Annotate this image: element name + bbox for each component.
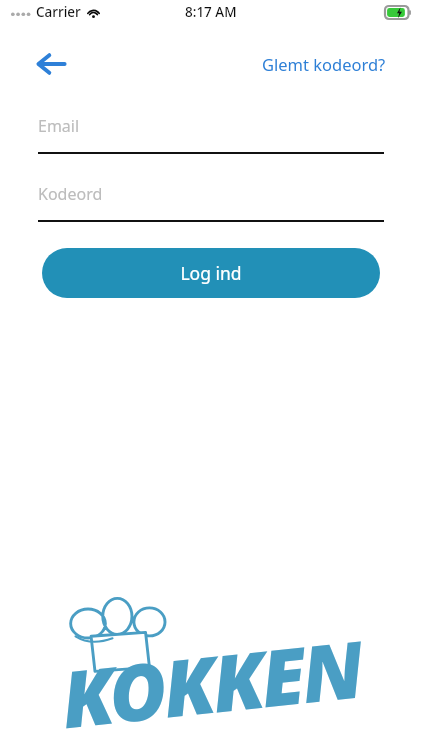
staticText: Carrier: [36, 3, 81, 21]
staticText: KOKKEN: [56, 615, 366, 750]
button[interactable]: Glemt kodeord?: [262, 53, 386, 75]
button[interactable]: Log ind: [42, 248, 380, 298]
staticText: Email: [38, 115, 80, 137]
button[interactable]: Back: [28, 41, 74, 87]
staticText: Glemt kodeord?: [262, 53, 386, 75]
staticText: Kodeord: [38, 183, 103, 205]
button[interactable]: Email: [38, 110, 384, 154]
staticText: Log ind: [180, 261, 242, 285]
button[interactable]: Kodeord: [38, 178, 384, 222]
staticText: 8:17 AM: [185, 3, 237, 21]
